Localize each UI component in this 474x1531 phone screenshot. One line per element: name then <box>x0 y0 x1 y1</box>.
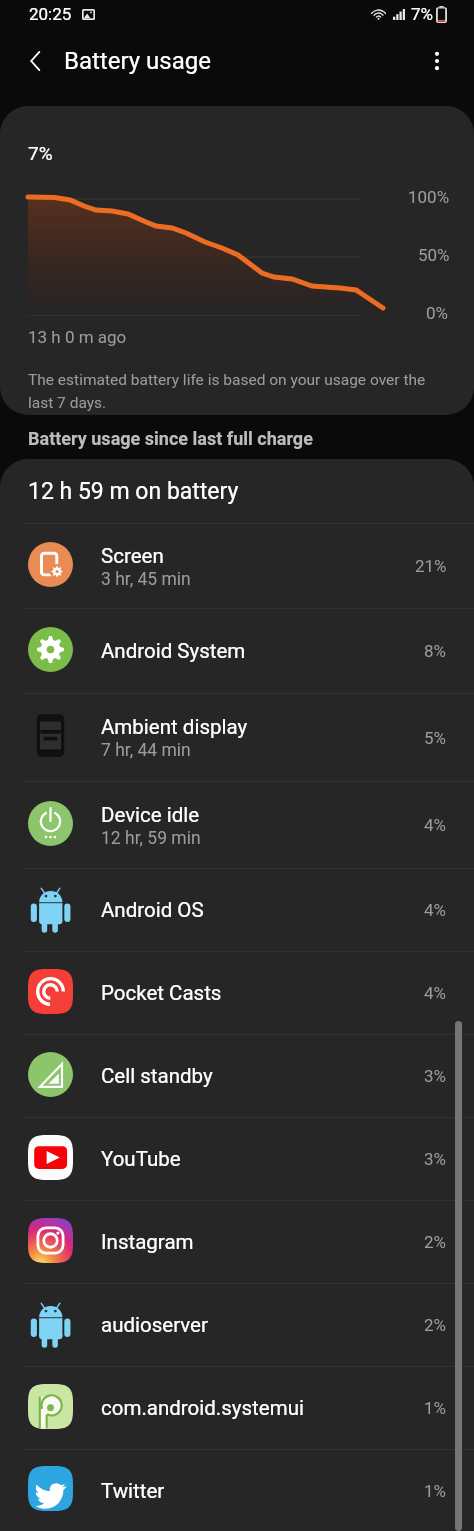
staticText: com.android.systemui <box>101 1396 304 1420</box>
staticText: 21% <box>415 556 447 576</box>
button[interactable]: audioserver <box>0 1284 474 1366</box>
staticText: Battery usage <box>64 47 211 75</box>
staticText: Android OS <box>101 898 204 922</box>
button[interactable]: Screen <box>0 524 474 608</box>
staticText: 3% <box>424 1066 447 1086</box>
button[interactable]: Twitter <box>0 1450 474 1531</box>
staticText: 0% <box>426 303 449 323</box>
staticText: Twitter <box>101 1479 165 1503</box>
button[interactable]: com.android.systemui <box>0 1367 474 1449</box>
staticText: 7 hr, 44 min <box>101 740 191 761</box>
staticText: 20:25 <box>29 4 72 24</box>
staticText: 7% <box>411 4 434 24</box>
button[interactable]: More options <box>415 39 459 83</box>
button[interactable]: Cell standby <box>0 1035 474 1117</box>
staticText: 12 hr, 59 min <box>101 828 201 849</box>
button[interactable]: YouTube <box>0 1118 474 1200</box>
staticText: Screen <box>101 544 164 568</box>
staticText: YouTube <box>101 1147 181 1171</box>
staticText: audioserver <box>101 1313 208 1337</box>
button[interactable]: Android System <box>0 609 474 693</box>
staticText: 3% <box>424 1149 447 1169</box>
staticText: 100% <box>408 187 450 207</box>
staticText: 5% <box>424 728 447 748</box>
staticText: Android System <box>101 639 246 663</box>
staticText: Instagram <box>101 1230 194 1254</box>
button[interactable]: Android OS <box>0 869 474 951</box>
staticText: 4% <box>424 815 447 835</box>
button[interactable]: Back <box>14 39 58 83</box>
staticText: Pocket Casts <box>101 981 222 1005</box>
staticText: 2% <box>424 1315 447 1335</box>
staticText: 1% <box>424 1481 447 1501</box>
staticText: 7% <box>28 142 53 164</box>
button[interactable]: Instagram <box>0 1201 474 1283</box>
staticText: 4% <box>424 900 447 920</box>
staticText: 12 h 59 m on battery <box>28 478 239 505</box>
button[interactable]: Ambient display <box>0 694 474 781</box>
staticText: 2% <box>424 1232 447 1252</box>
staticText: 3 hr, 45 min <box>101 569 191 590</box>
staticText: 8% <box>424 641 447 661</box>
staticText: Battery usage since last full charge <box>28 428 313 449</box>
staticText: The estimated battery life is based on y… <box>28 371 430 412</box>
staticText: Ambient display <box>101 715 248 739</box>
staticText: 1% <box>424 1398 447 1418</box>
button[interactable]: Pocket Casts <box>0 952 474 1034</box>
staticText: 13 h 0 m ago <box>28 327 127 347</box>
staticText: 4% <box>424 983 447 1003</box>
button[interactable]: Device idle <box>0 782 474 868</box>
staticText: 50% <box>418 245 450 265</box>
staticText: Cell standby <box>101 1064 213 1088</box>
staticText: Device idle <box>101 803 200 827</box>
